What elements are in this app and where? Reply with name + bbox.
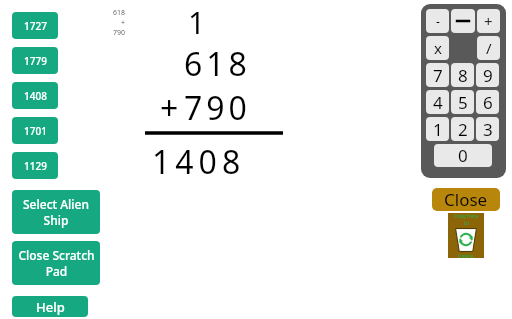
button[interactable]: 1727 (12, 12, 58, 39)
staticText: 1779 (24, 54, 47, 68)
staticText: / (486, 38, 492, 58)
staticText: 5 (458, 91, 468, 114)
staticText: + (160, 86, 179, 130)
button[interactable]: Select Alien Ship (12, 190, 100, 234)
staticText: Drag Here (454, 213, 479, 220)
staticText: Close (444, 188, 488, 211)
staticText: Close Scratch Pad (18, 247, 95, 280)
staticText: 1701 (24, 124, 47, 138)
staticText: 1408 (24, 89, 47, 103)
staticText: 0 (458, 144, 468, 167)
staticText: + (121, 18, 126, 28)
button[interactable]: Digit 5 (451, 90, 474, 114)
staticText: 3 (483, 118, 493, 141)
staticText: 790 (113, 28, 126, 38)
button[interactable]: 1129 (12, 152, 58, 179)
staticText: to (464, 220, 469, 227)
staticText: 1 (188, 2, 206, 43)
button[interactable]: Digit 9 (476, 63, 499, 87)
staticText: Delete (458, 253, 474, 258)
button[interactable]: 1701 (12, 117, 58, 144)
button[interactable]: Digit 2 (451, 117, 474, 141)
staticText: 1129 (24, 159, 47, 173)
staticText: 6 (483, 91, 493, 114)
button[interactable]: Digit 3 (476, 117, 499, 141)
button[interactable]: Digit 0 (434, 144, 492, 167)
button[interactable]: 1779 (12, 47, 58, 74)
staticText: 618 (113, 8, 126, 18)
staticText: 8 (458, 64, 468, 87)
staticText: 4 (433, 91, 443, 114)
button[interactable]: Multiply (426, 36, 449, 60)
staticText: 2 (458, 118, 468, 141)
button[interactable]: Digit 4 (426, 90, 449, 114)
staticText: 1408 (152, 140, 246, 184)
button[interactable]: Digit 7 (426, 63, 449, 87)
button[interactable]: Add (477, 9, 500, 33)
button[interactable]: Digit 8 (451, 63, 474, 87)
staticText: 7 (433, 64, 443, 87)
button[interactable]: Subtract (451, 9, 475, 33)
button[interactable]: Digit 1 (426, 117, 449, 141)
button[interactable]: Divide (477, 36, 500, 60)
staticText: Select Alien Ship (23, 196, 89, 229)
button[interactable]: Close Scratch Pad (12, 241, 100, 285)
button[interactable]: Minus (426, 9, 449, 33)
button[interactable]: Help (12, 296, 88, 317)
button[interactable]: Digit 6 (476, 90, 499, 114)
staticText: 618 (184, 42, 251, 86)
staticText: Help (36, 298, 65, 316)
button[interactable]: Drag here to delete (448, 213, 484, 258)
staticText: x (434, 38, 442, 58)
button[interactable]: Close (432, 188, 500, 211)
staticText: + (484, 11, 493, 31)
button[interactable]: 1408 (12, 82, 58, 109)
staticText: 1 (433, 118, 443, 141)
staticText: - (436, 13, 440, 29)
staticText: 790 (184, 86, 251, 130)
staticText: 1727 (24, 19, 47, 33)
staticText: 9 (483, 64, 493, 87)
